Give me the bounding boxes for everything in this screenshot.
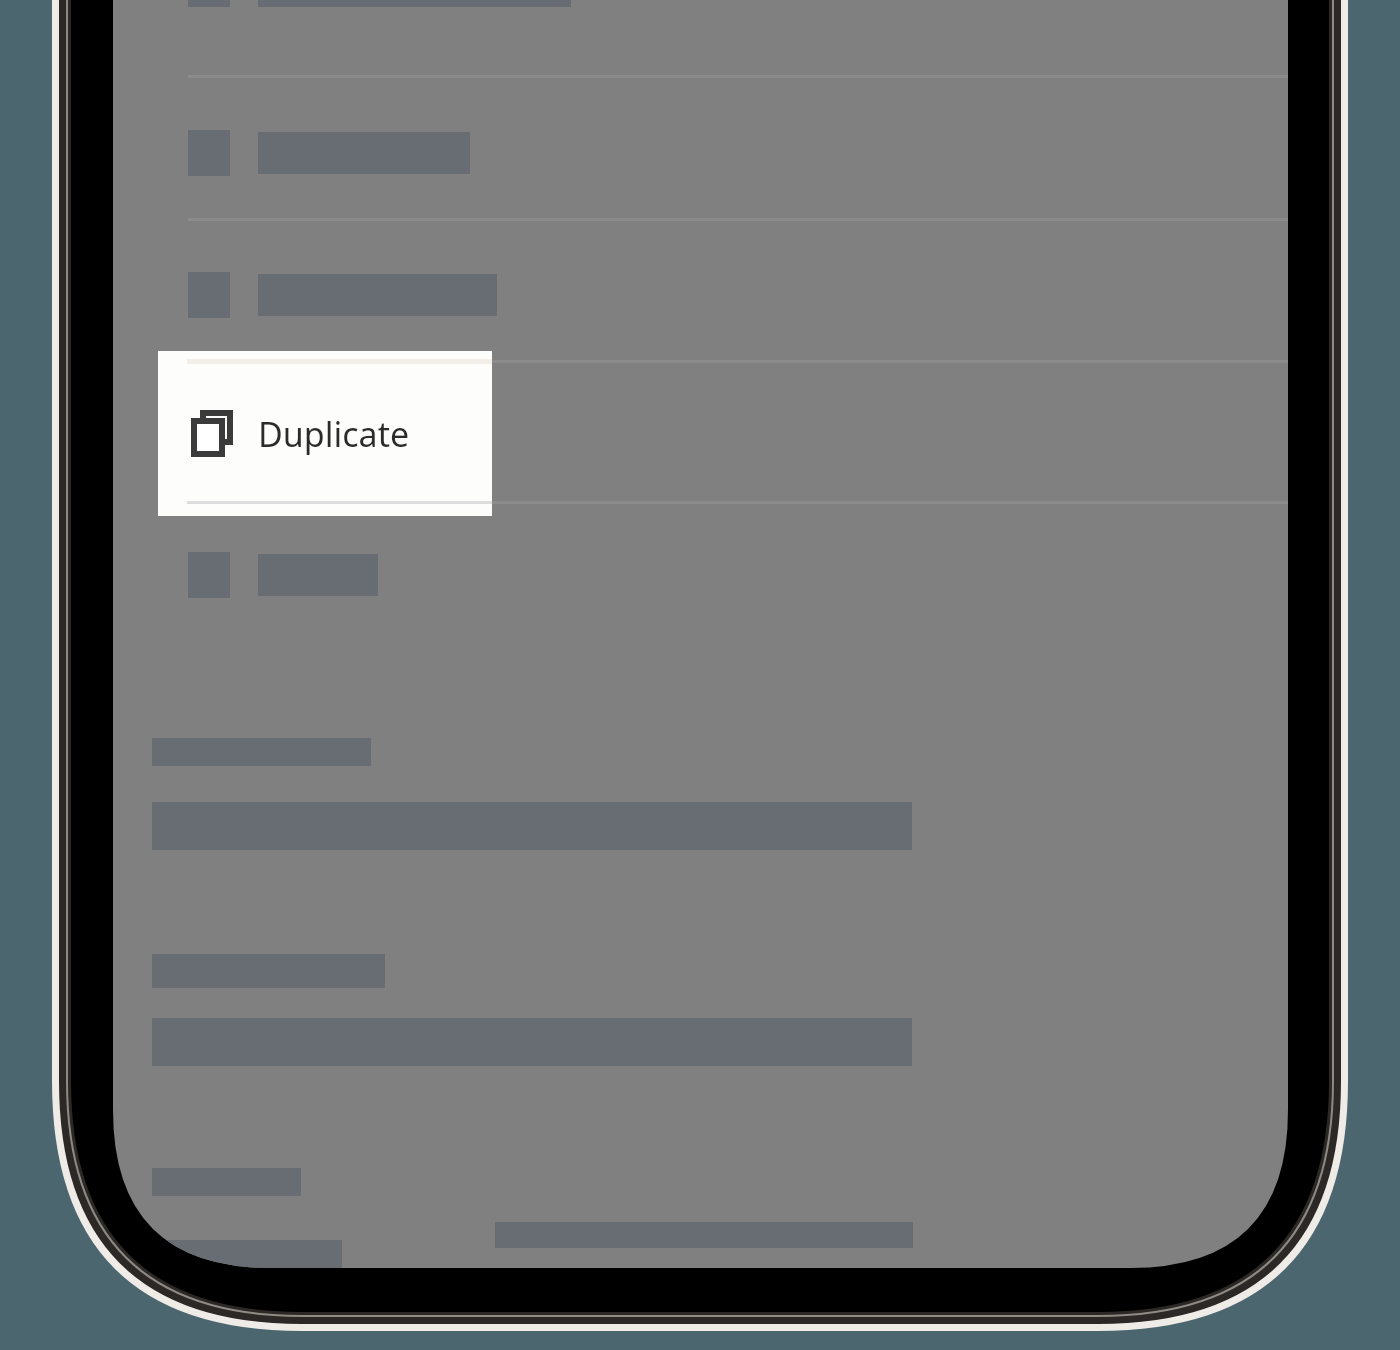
button[interactable]: Duplicate: [158, 351, 492, 516]
other: Duplicate: [190, 408, 236, 458]
staticText: Duplicate: [258, 411, 410, 457]
